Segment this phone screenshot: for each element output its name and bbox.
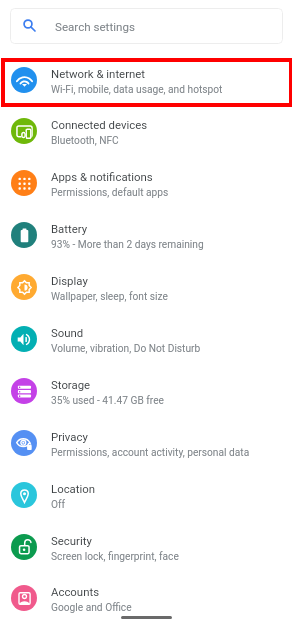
staticText: Volume, vibration, Do Not Disturb [51, 343, 292, 355]
button[interactable]: Display [0, 261, 292, 313]
staticText: Google and Office [51, 602, 292, 614]
staticText: Battery [51, 222, 292, 235]
staticText: Apps & notifications [51, 170, 292, 183]
button[interactable]: Battery [0, 209, 292, 261]
staticText: Location [51, 482, 292, 495]
staticText: Permissions, default apps [51, 187, 292, 199]
staticText: Storage [51, 378, 292, 391]
staticText: Accounts [51, 585, 292, 598]
button[interactable]: Accounts [0, 572, 292, 623]
staticText: Display [51, 274, 292, 287]
staticText: 93% - More than 2 days remaining [51, 239, 292, 251]
button[interactable]: Search [10, 8, 283, 44]
button[interactable]: Sound [0, 313, 292, 365]
button[interactable]: Privacy [0, 417, 292, 469]
staticText: Wallpaper, sleep, font size [51, 291, 292, 303]
button[interactable]: Apps & notifications [0, 157, 292, 209]
staticText: Search settings [55, 20, 135, 34]
button[interactable]: Connected devices [0, 105, 292, 157]
staticText: Security [51, 534, 292, 547]
staticText: Permissions, account activity, personal … [51, 447, 292, 459]
staticText: Connected devices [51, 118, 292, 131]
staticText: Off [51, 499, 292, 511]
other: Search [19, 15, 37, 33]
staticText: Screen lock, fingerprint, face [51, 551, 292, 563]
staticText: Bluetooth, NFC [51, 135, 292, 147]
staticText: Sound [51, 326, 292, 339]
staticText: Network & internet [51, 67, 292, 80]
staticText: Privacy [51, 430, 292, 443]
staticText: Wi-Fi, mobile, data usage, and hotspot [51, 84, 292, 96]
button[interactable]: Location [0, 469, 292, 521]
button[interactable]: Storage [0, 365, 292, 417]
staticText: 35% used - 41.47 GB free [51, 395, 292, 407]
button[interactable]: Security [0, 521, 292, 573]
button[interactable]: Network & internet [0, 54, 292, 106]
